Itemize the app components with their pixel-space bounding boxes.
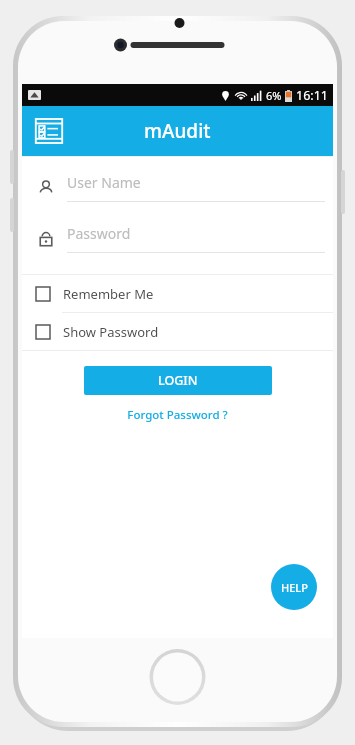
staticText: 6%: [266, 88, 282, 103]
button[interactable]: Password: [22, 224, 333, 253]
staticText: Password: [67, 224, 131, 243]
staticText: HELP: [281, 580, 308, 595]
button[interactable]: mAudit logo: [32, 114, 66, 148]
staticText: mAudit: [144, 118, 211, 144]
staticText: 16:11: [296, 87, 328, 104]
button[interactable]: Remember Me: [22, 275, 333, 312]
button[interactable]: HELP: [271, 564, 317, 610]
button[interactable]: LOGIN: [84, 366, 272, 395]
staticText: User Name: [67, 173, 141, 192]
button[interactable]: Show Password: [22, 313, 333, 350]
button[interactable]: User Name: [22, 173, 333, 202]
staticText: Show Password: [63, 323, 159, 341]
button[interactable]: Forgot Password ?: [22, 405, 333, 425]
staticText: LOGIN: [158, 372, 198, 389]
staticText: Remember Me: [63, 285, 154, 303]
